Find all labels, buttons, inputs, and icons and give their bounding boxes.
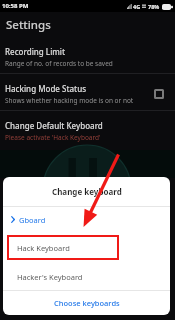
staticText: Shows whether hacking mode is on or not [5, 96, 134, 105]
staticText: Change Default Keyboard [5, 120, 103, 131]
button[interactable]: Choose keyboards [3, 291, 170, 315]
staticText: Gboard [19, 215, 46, 225]
staticText: Hacker's Keyboard [17, 272, 83, 282]
staticText: Range of no. of records to be saved [5, 59, 113, 68]
staticText: Hack Keyboard [17, 243, 70, 253]
staticText: Recording Limit [5, 46, 66, 57]
button[interactable]: Hack Keyboard [3, 234, 170, 261]
button[interactable]: Hacking Mode Status [0, 74, 175, 110]
staticText: 10:58 PM [2, 2, 29, 10]
staticText: Hacking Mode Status [5, 83, 87, 94]
staticText: Please activate 'Hack Keyboard' [5, 133, 101, 142]
other: Hacking mode toggle [154, 89, 164, 99]
button[interactable]: Hacker's Keyboard [3, 264, 170, 290]
staticText: Settings [6, 17, 51, 33]
staticText: 78% [148, 3, 160, 10]
staticText: Choose keyboards [54, 298, 120, 308]
button[interactable]: Recording Limit [0, 37, 175, 73]
button[interactable]: Gboard [3, 207, 170, 232]
button[interactable]: Change Default Keyboard [0, 111, 175, 147]
staticText: 4G [133, 3, 141, 10]
staticText: Change keyboard [52, 186, 122, 197]
